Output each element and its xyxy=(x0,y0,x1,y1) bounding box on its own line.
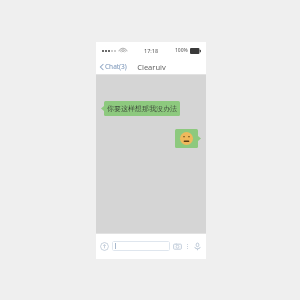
button[interactable]: Camera xyxy=(173,242,182,251)
button[interactable]: Microphone xyxy=(193,242,202,251)
staticText: 17:18 xyxy=(144,47,159,54)
button[interactable]: Voice input xyxy=(100,242,109,251)
button[interactable]: Chat(3) xyxy=(96,59,131,74)
button[interactable]: Message input xyxy=(112,241,170,251)
staticText: Chat(3) xyxy=(105,62,127,71)
staticText: Clearuiv xyxy=(137,62,166,72)
button[interactable]: 你要这样想那我没办法 xyxy=(104,101,180,116)
button[interactable] xyxy=(175,129,198,148)
button[interactable]: More options xyxy=(185,244,190,249)
staticText: 100% xyxy=(175,47,188,54)
staticText: 你要这样想那我没办法 xyxy=(107,104,177,113)
